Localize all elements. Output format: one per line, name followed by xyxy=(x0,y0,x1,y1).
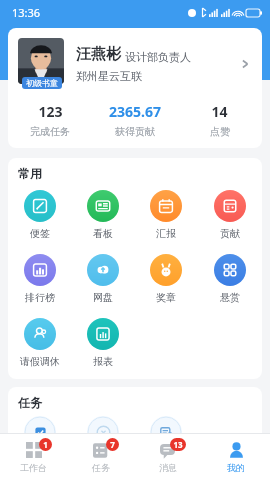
button[interactable]: 汇报 xyxy=(134,187,198,243)
staticText: 排行榜 xyxy=(25,291,55,304)
staticText: 7 xyxy=(110,439,115,450)
button[interactable]: 14 xyxy=(177,102,262,138)
staticText: 123 xyxy=(38,102,63,121)
staticText: 任务 xyxy=(18,395,42,410)
staticText: 悬赏 xyxy=(220,291,240,304)
staticText: 13:36 xyxy=(12,5,41,20)
button[interactable]: 123 xyxy=(8,102,92,138)
staticText: 常用 xyxy=(18,166,42,181)
button[interactable]: 排行榜 xyxy=(8,251,71,307)
button[interactable]: 悬赏 xyxy=(198,251,262,307)
other: Open profile xyxy=(238,57,252,71)
staticText: 2365.67 xyxy=(109,102,161,121)
button[interactable]: 13 xyxy=(134,434,202,480)
button[interactable]: Task doc xyxy=(134,416,198,452)
staticText: 13 xyxy=(173,439,183,450)
staticText: 汇报 xyxy=(156,227,176,240)
staticText: 消息 xyxy=(159,462,177,473)
staticText: 看板 xyxy=(93,227,113,240)
button[interactable]: 看板 xyxy=(71,187,134,243)
staticText: 贡献 xyxy=(220,227,240,240)
button[interactable]: 报表 xyxy=(71,315,134,371)
button[interactable]: 2365.67 xyxy=(92,102,177,138)
button[interactable]: 7 xyxy=(67,434,134,480)
staticText: 我的 xyxy=(227,462,245,473)
staticText: 14 xyxy=(211,102,228,121)
staticText: 奖章 xyxy=(156,291,176,304)
staticText: 设计部负责人 xyxy=(125,50,191,64)
staticText: 报表 xyxy=(93,355,113,368)
staticText: 网盘 xyxy=(93,291,113,304)
button[interactable]: 奖章 xyxy=(134,251,198,307)
button[interactable]: 1 xyxy=(0,434,67,480)
staticText: 任务 xyxy=(92,462,110,473)
button[interactable]: 贡献 xyxy=(198,187,262,243)
staticText: 郑州星云互联 xyxy=(76,69,142,83)
button[interactable]: 便签 xyxy=(8,187,71,243)
button[interactable]: Task task xyxy=(8,416,71,452)
staticText: 初级书童 xyxy=(26,78,58,88)
staticText: 1 xyxy=(43,439,48,450)
staticText: 获得贡献 xyxy=(115,125,155,138)
staticText: 工作台 xyxy=(20,462,47,473)
button[interactable]: 请假调休 xyxy=(8,315,71,371)
staticText: 便签 xyxy=(30,227,50,240)
button[interactable]: 我的 xyxy=(202,434,270,480)
button[interactable]: Task money xyxy=(71,416,134,452)
button[interactable]: 初级书童 xyxy=(8,28,262,148)
staticText: 汪燕彬 xyxy=(76,45,121,64)
staticText: 请假调休 xyxy=(20,355,60,368)
staticText: 完成任务 xyxy=(30,125,70,138)
staticText: 点赞 xyxy=(210,125,230,138)
button[interactable]: 网盘 xyxy=(71,251,134,307)
